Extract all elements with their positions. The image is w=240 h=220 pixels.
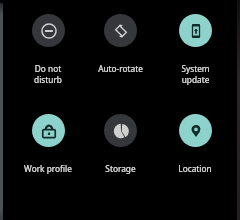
staticText: Storage — [105, 163, 136, 174]
button[interactable]: Location — [159, 114, 231, 174]
staticText: Location — [178, 163, 212, 174]
staticText: Work profile — [24, 163, 72, 174]
button[interactable]: Storage — [84, 114, 156, 174]
button[interactable]: Work profile — [12, 114, 84, 174]
button[interactable]: Auto-rotate — [84, 14, 156, 74]
staticText: System update — [181, 63, 210, 86]
staticText: Auto-rotate — [98, 63, 143, 74]
button[interactable]: System update — [159, 14, 231, 86]
button[interactable]: Do not disturb — [12, 14, 84, 86]
staticText: Do not disturb — [34, 63, 62, 86]
